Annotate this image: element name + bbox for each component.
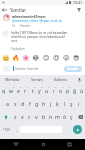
- staticText: 🔥: [12, 54, 20, 61]
- button[interactable]: u: [43, 84, 50, 97]
- staticText: Kullanıcı: [54, 77, 68, 82]
- staticText: 1s Yanıtla: [12, 24, 30, 28]
- button[interactable]: ş: [68, 97, 75, 110]
- button[interactable]: ö: [61, 110, 68, 123]
- staticText: 3: [20, 86, 22, 89]
- staticText: n: [49, 113, 53, 120]
- button[interactable]: q: [0, 84, 8, 97]
- staticText: .: [65, 127, 67, 133]
- staticText: g: [35, 100, 39, 107]
- staticText: z: [14, 113, 17, 120]
- staticText: Yanıtını Tweetle: [15, 67, 39, 71]
- button[interactable]: s: [11, 97, 19, 110]
- staticText: 4: [27, 86, 29, 89]
- button[interactable]: g: [33, 97, 40, 110]
- button[interactable]: 😜: [61, 52, 71, 62]
- staticText: ?123: [3, 128, 10, 132]
- staticText: 1: [5, 86, 7, 89]
- button[interactable]: 🔥: [11, 52, 21, 62]
- button[interactable]: p: [64, 84, 71, 97]
- button[interactable]: f: [26, 97, 33, 110]
- button[interactable]: ı: [50, 84, 57, 97]
- button[interactable]: Kullanıcı: [49, 75, 73, 84]
- button[interactable]: ,: [13, 123, 20, 136]
- staticText: ş: [70, 100, 73, 107]
- staticText: cort: [11, 38, 18, 42]
- staticText: ı: [53, 87, 55, 94]
- button[interactable]: y: [36, 84, 43, 97]
- button[interactable]: n: [47, 110, 54, 123]
- button[interactable]: ü: [78, 84, 85, 97]
- button[interactable]: 👑: [1, 52, 11, 62]
- button[interactable]: Back: [6, 139, 26, 150]
- button[interactable]: 😍: [51, 52, 61, 62]
- staticText: Yanıtla: [67, 67, 79, 71]
- staticText: 😊: [43, 54, 50, 61]
- staticText: 6: [41, 86, 43, 89]
- staticText: Paylaşılan: [11, 47, 25, 51]
- staticText: l: [64, 100, 66, 107]
- button[interactable]: Filter replies: [74, 5, 83, 14]
- staticText: 13:41: [73, 0, 83, 5]
- staticText: i: [78, 100, 80, 107]
- button[interactable]: t: [29, 84, 36, 97]
- button[interactable]: ğ: [71, 84, 78, 97]
- button[interactable]: j: [47, 97, 54, 110]
- staticText: b: [42, 113, 46, 120]
- button[interactable]: e: [15, 84, 22, 97]
- button[interactable]: 😂: [31, 52, 41, 62]
- button[interactable]: Merhaba: [0, 75, 25, 84]
- button[interactable]: r: [22, 84, 29, 97]
- staticText: ç: [70, 113, 73, 120]
- staticText: 0: [69, 86, 71, 89]
- button[interactable]: v: [33, 110, 40, 123]
- button[interactable]: Voice input: [73, 75, 85, 84]
- staticText: w: [9, 87, 14, 94]
- staticText: p: [66, 87, 70, 94]
- staticText: 7: [48, 86, 50, 89]
- button[interactable]: ç: [68, 110, 75, 123]
- button[interactable]: Recent apps: [59, 139, 79, 150]
- staticText: ,: [16, 127, 18, 133]
- button[interactable]: m: [54, 110, 61, 123]
- button[interactable]: k: [54, 97, 61, 110]
- staticText: Yanıtlar: [10, 7, 27, 13]
- button[interactable]: Backspace: [75, 110, 85, 123]
- button[interactable]: 😊: [41, 52, 51, 62]
- button[interactable]: Back: [0, 5, 9, 14]
- staticText: Tamam: [31, 77, 43, 82]
- staticText: 9: [62, 86, 64, 89]
- button[interactable]: Yanıtla: [64, 66, 82, 72]
- button[interactable]: a: [3, 97, 11, 110]
- button[interactable]: i: [75, 97, 82, 110]
- button[interactable]: l: [61, 97, 68, 110]
- staticText: j: [50, 100, 52, 107]
- staticText: q: [2, 87, 6, 94]
- button[interactable]: b: [40, 110, 47, 123]
- button[interactable]: h: [40, 97, 47, 110]
- button[interactable]: d: [19, 97, 26, 110]
- staticText: k: [56, 100, 59, 107]
- staticText: e: [17, 87, 20, 94]
- button[interactable]: 😎: [71, 52, 81, 62]
- button[interactable]: Send: [73, 125, 82, 134]
- staticText: f: [29, 100, 31, 107]
- button[interactable]: x: [19, 110, 26, 123]
- staticText: halko7 BP Dilbonuki ve cat kazanilan.: [11, 30, 69, 34]
- staticText: 😜: [63, 54, 70, 61]
- button[interactable]: o: [57, 84, 64, 97]
- button[interactable]: z: [11, 110, 19, 123]
- staticText: 😍: [53, 54, 60, 61]
- button[interactable]: Shift: [0, 110, 11, 123]
- staticText: olirirlik ve yazışım olsın/abzebund2: [11, 34, 66, 38]
- staticText: ü: [80, 87, 84, 94]
- staticText: c: [28, 113, 31, 120]
- button[interactable]: 🌸: [21, 52, 31, 62]
- button[interactable]: ?123: [0, 123, 13, 136]
- button[interactable]: w: [8, 84, 15, 97]
- button[interactable]: c: [26, 110, 33, 123]
- button[interactable]: Home: [33, 139, 53, 150]
- button[interactable]: Tamam: [25, 75, 49, 84]
